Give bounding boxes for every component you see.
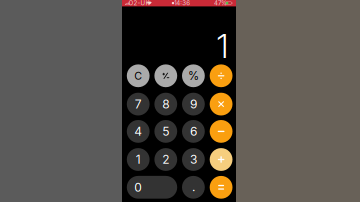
button[interactable]: 1 bbox=[127, 148, 150, 171]
button[interactable]: 4 bbox=[127, 120, 150, 143]
staticText: 0 bbox=[134, 180, 142, 194]
button[interactable]: 8 bbox=[154, 93, 177, 115]
button[interactable]: Divide bbox=[210, 64, 232, 87]
button[interactable]: Minus bbox=[210, 120, 232, 143]
staticText: 7 bbox=[135, 97, 142, 111]
staticText: . bbox=[192, 179, 195, 194]
button[interactable]: 0 bbox=[127, 176, 177, 199]
button[interactable]: . bbox=[182, 176, 205, 199]
button[interactable]: % bbox=[182, 64, 205, 87]
button[interactable]: Plus minus bbox=[154, 64, 177, 87]
button[interactable]: 6 bbox=[182, 120, 205, 143]
staticText: C bbox=[134, 69, 142, 82]
staticText: 47% bbox=[214, 0, 227, 7]
staticText: 1 bbox=[136, 152, 141, 167]
button[interactable]: 9 bbox=[182, 93, 205, 115]
staticText: 1 bbox=[217, 26, 229, 66]
button[interactable]: C bbox=[127, 64, 150, 87]
staticText: O2-UK bbox=[129, 0, 150, 7]
staticText: 8 bbox=[162, 97, 169, 111]
button[interactable]: Equals bbox=[210, 176, 232, 199]
button[interactable]: Multiply bbox=[210, 93, 232, 115]
button[interactable]: 5 bbox=[154, 120, 177, 143]
staticText: 14:36 bbox=[174, 0, 190, 7]
staticText: 3 bbox=[190, 152, 197, 167]
button[interactable]: Plus bbox=[210, 148, 232, 171]
button[interactable]: 3 bbox=[182, 148, 205, 171]
staticText: 9 bbox=[190, 97, 197, 111]
staticText: 5 bbox=[162, 124, 169, 139]
button[interactable]: 7 bbox=[127, 93, 150, 115]
staticText: 4 bbox=[134, 124, 142, 139]
button[interactable]: 2 bbox=[154, 148, 177, 171]
staticText: 6 bbox=[190, 124, 197, 139]
staticText: % bbox=[188, 69, 199, 83]
staticText: 2 bbox=[162, 152, 169, 167]
